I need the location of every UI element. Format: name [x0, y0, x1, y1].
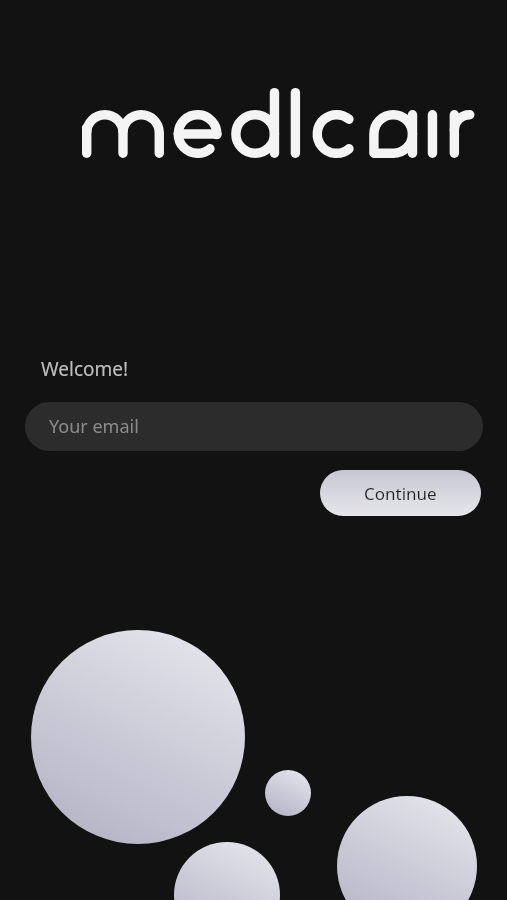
staticText: Welcome! [41, 356, 129, 382]
staticText: Your email [49, 414, 139, 439]
staticText: Continue [364, 482, 437, 505]
button[interactable]: Continue [320, 470, 481, 516]
button[interactable]: Your email [25, 402, 483, 451]
